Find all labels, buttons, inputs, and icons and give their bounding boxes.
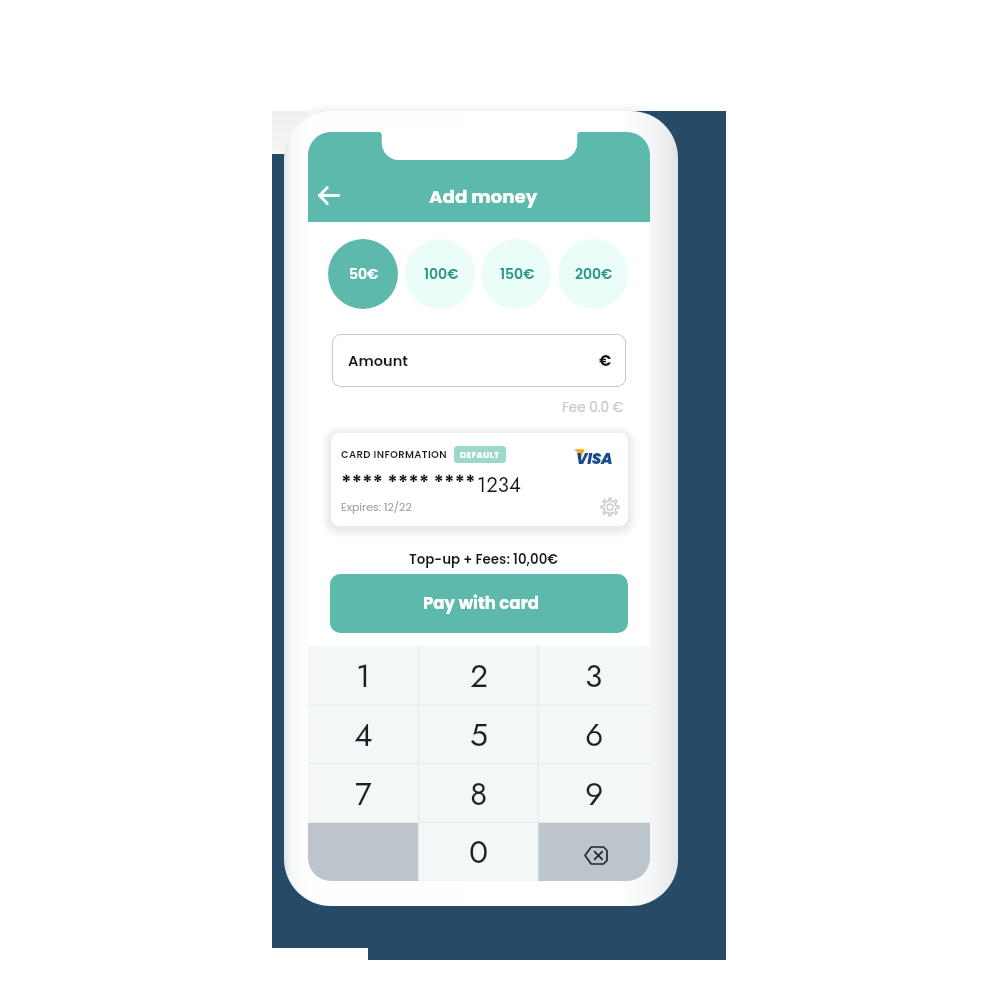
button[interactable]: 7 <box>308 764 419 823</box>
staticText: 1 <box>356 653 371 699</box>
button[interactable]: Card settings <box>598 495 622 519</box>
staticText: 6 <box>585 712 604 758</box>
staticText: 4 <box>354 712 373 758</box>
staticText: € <box>599 350 612 372</box>
staticText: 0 <box>469 829 489 875</box>
staticText: 2 <box>470 653 489 699</box>
button[interactable]: 5 <box>419 705 539 764</box>
staticText: 3 <box>585 653 603 699</box>
button[interactable]: 1 <box>308 646 419 705</box>
button[interactable]: 200€ <box>558 239 628 309</box>
staticText: Amount <box>348 351 409 371</box>
button[interactable]: CARD INFORMATION <box>331 433 628 526</box>
staticText: 7 <box>355 771 372 817</box>
button[interactable]: 9 <box>538 764 650 823</box>
button[interactable]: 4 <box>308 705 419 764</box>
button[interactable]: 0 <box>419 823 539 881</box>
button[interactable]: 100€ <box>405 239 475 309</box>
button[interactable]: 2 <box>419 646 539 705</box>
button[interactable]: Pay with card <box>330 574 628 633</box>
staticText: Top-up + Fees: 10,00€ <box>409 550 559 569</box>
button[interactable] <box>308 823 419 881</box>
staticText: 200€ <box>575 264 613 284</box>
staticText: Expires: 12/22 <box>341 499 412 514</box>
staticText: 150€ <box>500 264 535 284</box>
staticText: 5 <box>470 712 488 758</box>
button[interactable]: Back <box>308 174 350 216</box>
staticText: 9 <box>585 771 604 817</box>
staticText: CARD INFORMATION <box>341 447 447 461</box>
button[interactable]: 150€ <box>481 239 551 309</box>
staticText: 1234 <box>477 470 521 499</box>
button[interactable]: 6 <box>538 705 650 764</box>
button[interactable]: 3 <box>538 646 650 705</box>
staticText: VISA <box>576 448 613 466</box>
staticText: Pay with card <box>423 592 540 615</box>
button[interactable]: 50€ <box>328 239 398 309</box>
staticText: Fee 0.0 € <box>562 398 624 417</box>
staticText: DEFAULT <box>460 449 500 461</box>
staticText: 50€ <box>349 264 379 284</box>
staticText: Add money <box>429 184 538 210</box>
staticText: **** **** **** <box>341 468 476 496</box>
button[interactable]: 8 <box>419 764 539 823</box>
button[interactable]: Amount <box>332 334 626 387</box>
button[interactable]: Backspace <box>538 823 650 881</box>
staticText: 8 <box>470 771 488 817</box>
staticText: 100€ <box>424 264 459 284</box>
